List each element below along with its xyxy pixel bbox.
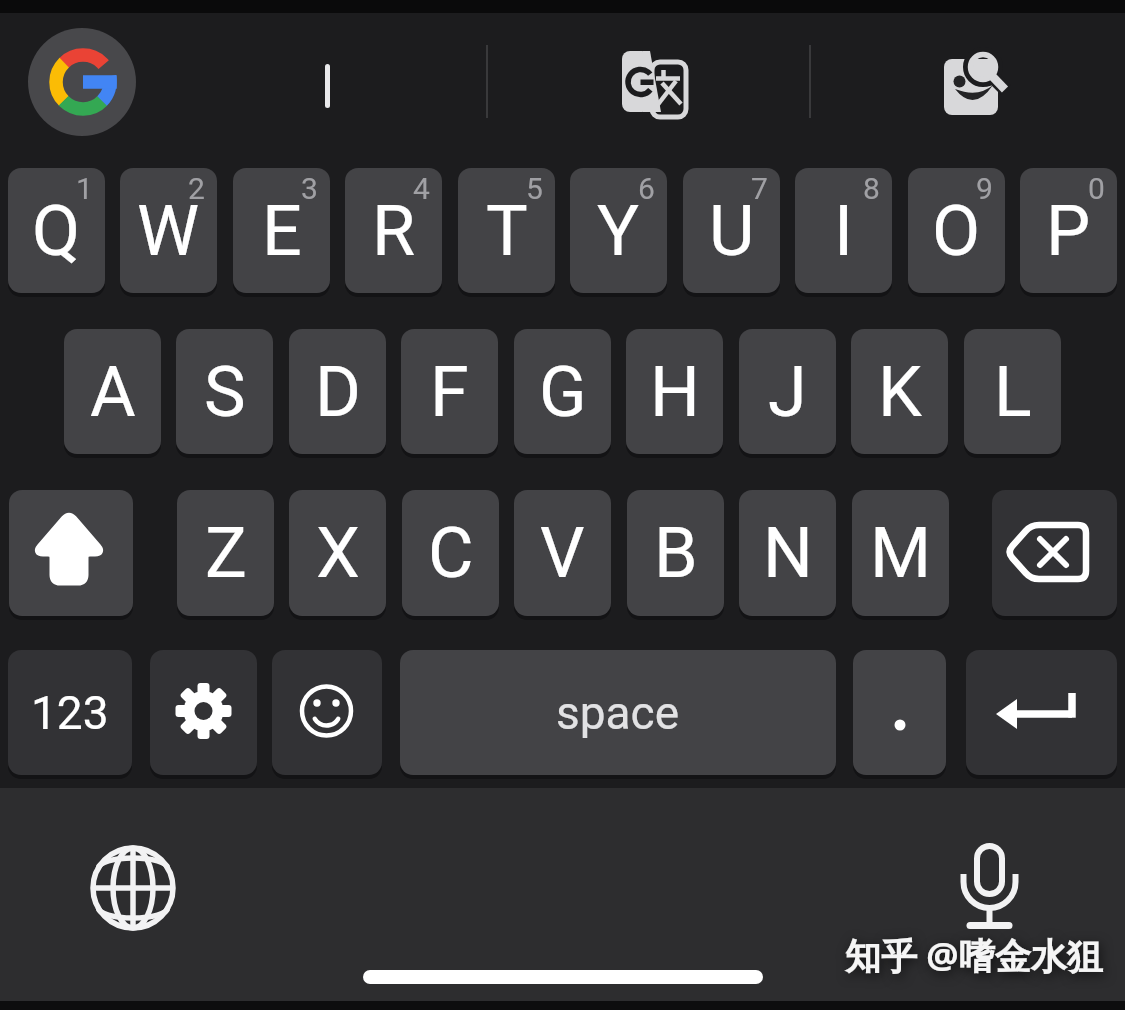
staticText: E [262, 190, 302, 272]
staticText: J [768, 351, 807, 433]
button[interactable] [150, 650, 257, 775]
button[interactable]: P [1020, 168, 1117, 293]
button[interactable]: Z [177, 490, 274, 616]
staticText: K [878, 351, 922, 433]
staticText: V [540, 512, 585, 594]
button[interactable]: W [120, 168, 217, 293]
button[interactable]: 123 [8, 650, 132, 775]
staticText: Q [32, 190, 81, 272]
button[interactable]: I [795, 168, 892, 293]
staticText: B [654, 512, 698, 594]
staticText: 5 [526, 171, 543, 206]
staticText: R [372, 190, 416, 272]
button[interactable] [9, 490, 133, 616]
staticText: I [834, 190, 854, 272]
staticText: C [428, 512, 474, 594]
button[interactable] [940, 835, 1040, 935]
button[interactable]: X [289, 490, 386, 616]
button[interactable] [966, 650, 1117, 775]
staticText: 7 [751, 171, 768, 206]
button[interactable]: U [683, 168, 780, 293]
button[interactable]: C [402, 490, 499, 616]
button[interactable]: E [233, 168, 330, 293]
button[interactable]: D [289, 329, 386, 454]
button[interactable]: H [626, 329, 723, 454]
button[interactable]: space [400, 650, 836, 775]
staticText: S [204, 351, 246, 433]
staticText: 4 [413, 171, 430, 206]
button[interactable] [610, 40, 700, 130]
staticText: Z [205, 512, 247, 594]
staticText: 9 [976, 171, 993, 206]
staticText: G [539, 351, 587, 433]
staticText: U [709, 190, 755, 272]
staticText: A [90, 351, 136, 433]
button[interactable]: M [852, 490, 949, 616]
button[interactable]: N [739, 490, 836, 616]
staticText: N [763, 512, 813, 594]
staticText: 0 [1088, 171, 1105, 206]
staticText: L [994, 351, 1032, 433]
staticText: F [430, 351, 469, 433]
staticText: 2 [188, 171, 205, 206]
staticText: D [315, 351, 361, 433]
button[interactable]: T [458, 168, 555, 293]
button[interactable]: V [514, 490, 611, 616]
button[interactable] [930, 40, 1020, 130]
button[interactable]: Q [8, 168, 105, 293]
button[interactable]: K [851, 329, 948, 454]
staticText: O [932, 190, 981, 272]
button[interactable] [992, 490, 1117, 616]
button[interactable]: O [908, 168, 1005, 293]
staticText: P [1046, 190, 1091, 272]
button[interactable]: L [964, 329, 1061, 454]
button[interactable]: F [401, 329, 498, 454]
button[interactable]: G [514, 329, 611, 454]
staticText: H [650, 351, 700, 433]
button[interactable] [85, 840, 185, 940]
button[interactable]: B [627, 490, 724, 616]
button[interactable] [272, 650, 382, 775]
staticText: 8 [863, 171, 880, 206]
staticText: 123 [31, 686, 109, 740]
staticText: W [137, 190, 200, 272]
button[interactable] [853, 650, 946, 775]
button[interactable]: R [345, 168, 442, 293]
staticText: T [486, 190, 528, 272]
staticText: space [556, 686, 680, 740]
button[interactable]: J [739, 329, 836, 454]
staticText: 6 [638, 171, 655, 206]
button[interactable]: Y [570, 168, 667, 293]
button[interactable]: A [64, 329, 161, 454]
button[interactable] [28, 28, 136, 136]
staticText: X [316, 512, 360, 594]
staticText: M [870, 512, 932, 594]
staticText: 1 [76, 171, 93, 206]
staticText: 知乎 @嗜金水狙 [845, 931, 1103, 980]
staticText: 3 [301, 171, 318, 206]
button[interactable]: S [176, 329, 273, 454]
staticText: Y [597, 190, 640, 272]
